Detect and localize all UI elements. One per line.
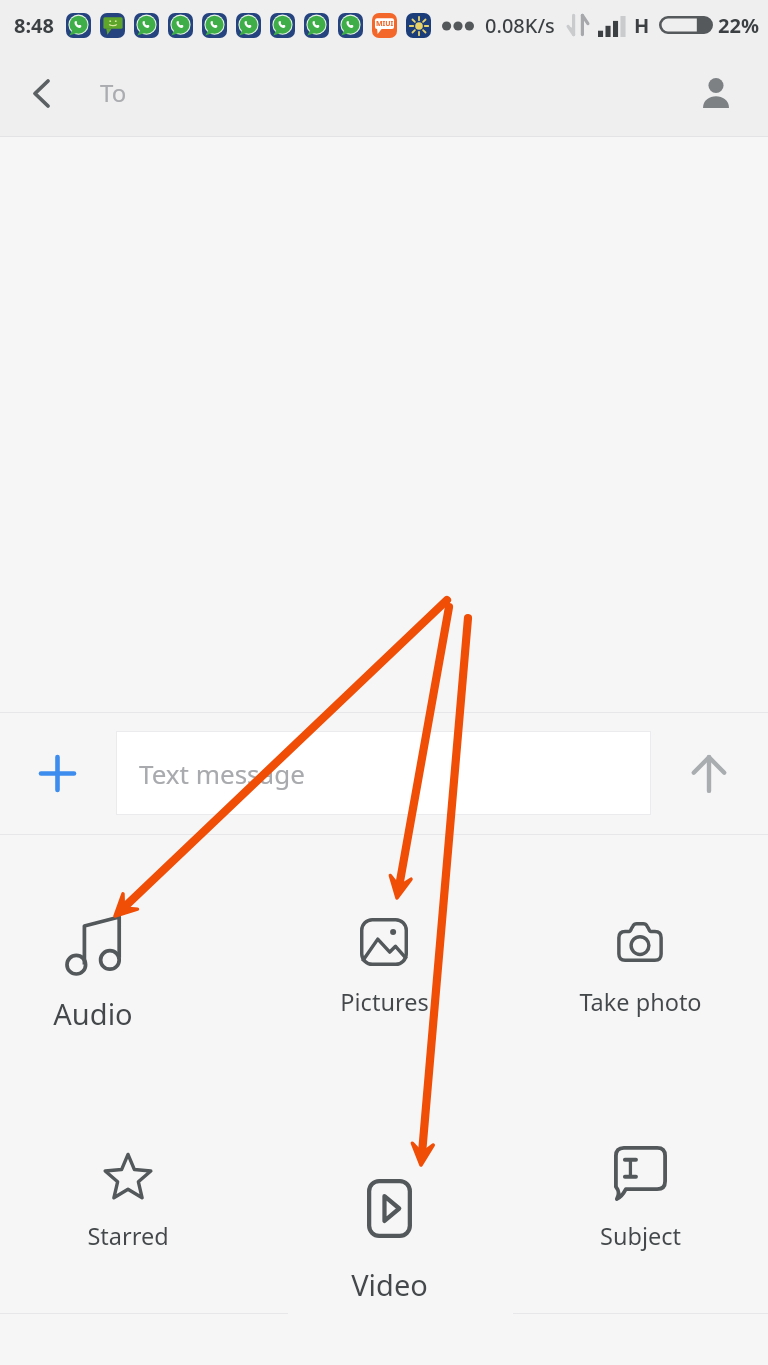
button[interactable]: Send — [652, 713, 768, 834]
staticText: 8:48 — [14, 12, 54, 39]
staticText: 0.08K/s — [485, 12, 555, 39]
button[interactable]: Back — [4, 50, 80, 136]
staticText: To — [100, 76, 127, 109]
staticText: Audio — [53, 994, 133, 1033]
staticText: H — [634, 12, 650, 39]
staticText: 22% — [718, 12, 759, 39]
button[interactable]: Choose contact — [676, 50, 756, 136]
staticText: Subject — [600, 1220, 681, 1252]
button[interactable]: Take photo — [515, 858, 765, 1028]
button[interactable]: Audio — [0, 860, 218, 1030]
button[interactable]: Starred — [3, 1092, 253, 1262]
button[interactable]: Text message — [116, 731, 651, 815]
staticText: MIUI — [376, 19, 394, 29]
button[interactable]: Add attachment — [0, 713, 116, 834]
button[interactable]: Pictures — [259, 858, 509, 1028]
button[interactable]: Subject — [515, 1088, 765, 1258]
staticText: Starred — [87, 1220, 169, 1252]
staticText: Pictures — [340, 986, 429, 1018]
button[interactable]: Video — [264, 1124, 514, 1294]
staticText: Video — [351, 1265, 428, 1304]
staticText: Take photo — [579, 986, 702, 1018]
staticText: Text message — [139, 756, 305, 791]
